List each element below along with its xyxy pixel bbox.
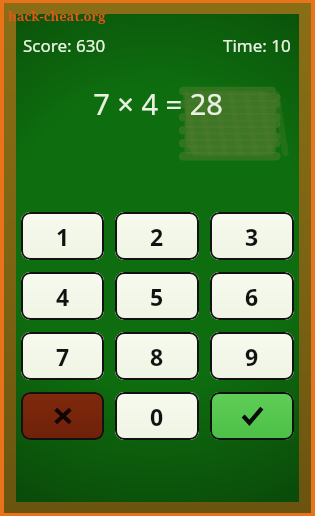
staticText: hack-cheat.org (8, 7, 106, 25)
staticText: 5 (150, 281, 164, 312)
staticText: 3 (245, 221, 259, 252)
staticText: 7 × 4 = 28 (93, 84, 223, 123)
button[interactable]: 3 (210, 212, 294, 260)
staticText: 7 (56, 341, 70, 372)
button[interactable]: 0 (115, 392, 199, 440)
button[interactable]: 5 (115, 272, 199, 320)
staticText: 6 (245, 281, 259, 312)
button[interactable]: 1 (21, 212, 104, 260)
button[interactable]: 8 (115, 332, 199, 380)
button[interactable]: Submit answer (210, 392, 294, 440)
staticText: 0 (150, 401, 164, 432)
staticText: 2 (150, 221, 164, 252)
button[interactable]: 6 (210, 272, 294, 320)
staticText: Score: 630 (23, 34, 106, 57)
staticText: 1 (56, 221, 70, 252)
button[interactable]: 4 (21, 272, 104, 320)
staticText: 4 (56, 281, 70, 312)
button[interactable]: 9 (210, 332, 294, 380)
button[interactable]: Clear (21, 392, 104, 440)
staticText: 9 (245, 341, 259, 372)
button[interactable]: 2 (115, 212, 199, 260)
button[interactable]: 7 (21, 332, 104, 380)
staticText: Time: 10 (223, 34, 291, 57)
staticText: 8 (150, 341, 164, 372)
